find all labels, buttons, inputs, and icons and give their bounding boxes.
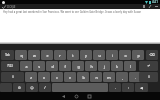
button[interactable]: ?123 [1,61,19,71]
staticText: a [25,64,28,69]
button[interactable]: q [15,50,27,60]
staticText: . [115,85,116,90]
staticText: v [69,75,71,80]
button[interactable]: Settings [13,83,25,92]
button[interactable]: w [28,50,40,60]
button[interactable]: g [72,61,84,71]
button[interactable]: s [33,61,45,71]
staticText: / [44,85,46,90]
button[interactable]: DONE [2,4,16,9]
button[interactable]: / [39,83,51,92]
staticText: y [85,53,87,58]
button[interactable]: Enter [139,61,158,71]
staticText: o [124,53,127,58]
button[interactable]: l [124,61,136,71]
staticText: g [77,64,80,69]
staticText: i [112,53,113,58]
staticText: , [122,75,123,80]
button[interactable]: u [93,50,105,60]
staticText: s [38,64,40,69]
button[interactable]: i [106,50,118,60]
staticText: m [107,75,111,80]
staticText: Tab [5,53,10,57]
button[interactable]: o [119,50,131,60]
button[interactable]: More options [153,4,159,9]
staticText: b [82,75,85,80]
staticText: n [95,75,98,80]
button[interactable]: m [103,72,115,82]
button[interactable]: k [111,61,123,71]
staticText: Hey had a great last weekend in San Fran… [3,10,141,14]
staticText: k [116,64,118,69]
button[interactable]: d [46,61,58,71]
button[interactable]: j [98,61,110,71]
staticText: t [72,53,74,58]
staticText: d [51,64,54,69]
staticText: : [128,85,129,90]
button[interactable]: Back [57,92,70,100]
button[interactable]: v [64,72,76,82]
button[interactable]: , [116,72,128,82]
staticText: . [135,75,136,80]
button[interactable]: c [51,72,63,82]
staticText: f [64,64,66,69]
button[interactable]: Shift [1,72,24,82]
staticText: ⇧ [147,75,151,79]
button[interactable]: Tab [1,50,14,60]
staticText: u [98,53,101,58]
button[interactable]: p [132,50,144,60]
button[interactable]: y [80,50,92,60]
button[interactable]: r [54,50,66,60]
staticText: ↵ [147,64,151,68]
staticText: ◀ [140,86,143,90]
button[interactable]: x [38,72,50,82]
staticText: w [33,53,36,58]
staticText: ⌫ [149,53,155,57]
button[interactable]: Attach [141,4,147,9]
staticText: j [104,64,105,69]
staticText: x [43,75,45,80]
staticText: q [20,53,23,58]
staticText: c [56,75,58,80]
button[interactable]: : [122,83,134,92]
button[interactable]: b [77,72,89,82]
staticText: 4:21 [152,0,158,4]
button[interactable]: . [109,83,121,92]
button[interactable]: Insert [147,4,153,9]
staticText: DONE [7,5,16,9]
staticText: z [30,75,32,80]
staticText: r [59,53,61,58]
staticText: l [130,64,131,69]
button[interactable]: . [129,72,141,82]
button[interactable]: Recent apps [83,92,96,100]
button[interactable]: h [85,61,97,71]
button[interactable]: n [90,72,102,82]
staticText: ⇧ [11,75,15,79]
staticText: ?123 [7,64,13,68]
staticText: p [137,53,140,58]
button[interactable]: e [41,50,53,60]
staticText: ☺ [30,86,34,90]
button[interactable]: Backspace [146,50,158,60]
button[interactable]: Left [135,83,148,92]
staticText: h [90,64,93,69]
button[interactable]: Shift [139,72,158,82]
button[interactable]: Home [70,92,83,100]
staticText: e [46,53,49,58]
button[interactable]: t [67,50,79,60]
button[interactable]: a [20,61,32,71]
button[interactable]: z [25,72,37,82]
staticText: ⚙ [18,86,21,90]
button[interactable]: Emoji [26,83,38,92]
button[interactable]: f [59,61,71,71]
